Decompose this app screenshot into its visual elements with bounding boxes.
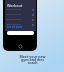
button[interactable]: Exercise plan	[7, 22, 34, 27]
staticText: Exercise plan	[7, 13, 22, 16]
staticText: Exercise plan	[7, 23, 22, 26]
staticText: Workout	[7, 3, 23, 8]
button[interactable]: Record	[18, 44, 23, 49]
staticText: Meet your new gym and diet coach	[19, 54, 46, 65]
button[interactable]: Exercise plan	[7, 17, 34, 22]
button[interactable]: See all plans	[7, 25, 23, 28]
staticText: Exercise plan	[7, 8, 22, 11]
button[interactable]: Exercise plan	[7, 12, 34, 17]
button[interactable]: Exercise plan	[7, 7, 34, 12]
button[interactable]	[7, 31, 34, 35]
staticText: Exercise plan	[7, 18, 22, 21]
